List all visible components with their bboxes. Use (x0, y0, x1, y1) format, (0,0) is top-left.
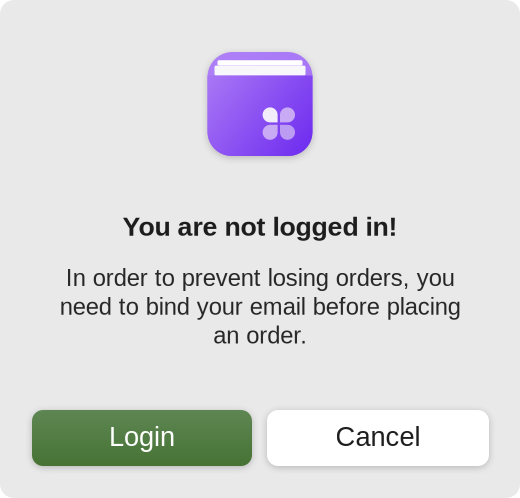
staticText: Cancel (335, 421, 420, 452)
staticText: You are not logged in! (122, 212, 397, 241)
button[interactable]: Cancel (267, 410, 489, 466)
staticText: Login (109, 421, 175, 452)
button[interactable]: Login (32, 410, 252, 466)
staticText: In order to prevent losing orders, you n… (59, 264, 460, 348)
